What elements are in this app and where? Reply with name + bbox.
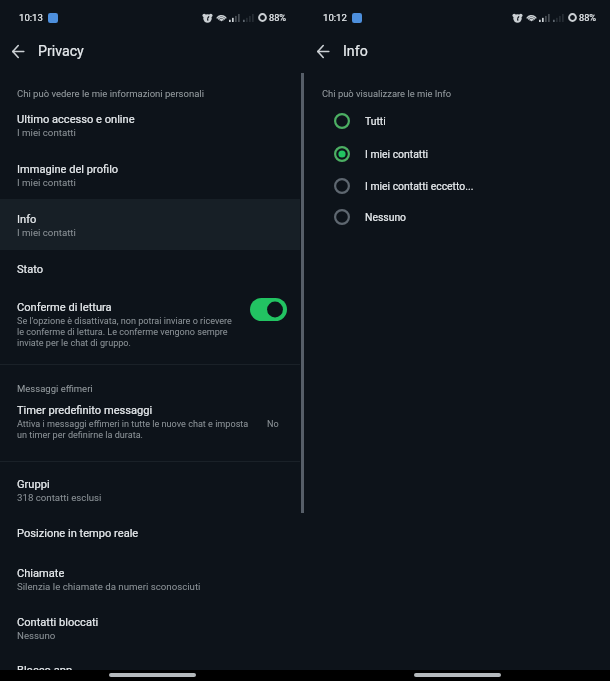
staticText: Privacy [38, 43, 84, 60]
staticText: Info [17, 212, 37, 225]
button[interactable] [0, 398, 300, 450]
button[interactable] [0, 514, 300, 553]
staticText: I miei contatti [17, 227, 76, 239]
staticText: Immagine del profilo [17, 162, 119, 175]
staticText: I miei contatti eccetto... [365, 180, 474, 192]
staticText: Stato [17, 262, 44, 275]
staticText: Posizione in tempo reale [17, 526, 139, 539]
staticText: Chi può visualizzare le mie Info [322, 88, 452, 99]
button[interactable] [0, 465, 300, 514]
staticText: Ultimo accesso e online [17, 112, 135, 125]
button[interactable] [300, 138, 610, 170]
staticText: I miei contatti [17, 177, 76, 189]
button[interactable] [0, 100, 300, 149]
staticText: Conferme di lettura [17, 300, 112, 313]
button[interactable] [300, 201, 610, 233]
button[interactable] [0, 602, 300, 649]
staticText: I miei contatti [17, 127, 76, 139]
staticText: 88% [269, 12, 287, 23]
staticText: Chiamate [17, 566, 65, 579]
staticText: Silenzia le chiamate da numeri sconosciu… [17, 581, 201, 593]
staticText: 10:13 [19, 12, 43, 24]
button[interactable]: Back [306, 35, 339, 68]
staticText: Contatti bloccati [17, 615, 99, 628]
staticText: Attiva i messaggi effimeri in tutte le n… [17, 418, 249, 440]
staticText: Nessuno [365, 211, 407, 223]
staticText: Messaggi effimeri [17, 383, 93, 394]
staticText: Blocco app [17, 663, 73, 676]
button[interactable] [0, 250, 300, 288]
button[interactable] [0, 553, 300, 602]
button[interactable] [0, 149, 300, 199]
staticText: Info [343, 43, 368, 60]
staticText: Nessuno [17, 630, 56, 642]
staticText: Gruppi [17, 477, 50, 490]
button[interactable] [0, 288, 300, 353]
staticText: No [267, 418, 279, 429]
staticText: Se l'opzione è disattivata, non potrai i… [17, 315, 233, 348]
staticText: 10:12 [323, 12, 347, 24]
button[interactable]: Back [1, 35, 34, 68]
button[interactable] [300, 170, 610, 202]
button[interactable] [0, 649, 300, 681]
staticText: I miei contatti [365, 148, 429, 160]
staticText: 88% [579, 12, 597, 23]
button[interactable] [300, 105, 610, 137]
button[interactable] [0, 199, 300, 250]
staticText: Timer predefinito messaggi [17, 403, 153, 416]
staticText: Chi può vedere le mie informazioni perso… [17, 88, 204, 99]
staticText: 318 contatti esclusi [17, 492, 102, 504]
staticText: Tutti [365, 115, 386, 127]
